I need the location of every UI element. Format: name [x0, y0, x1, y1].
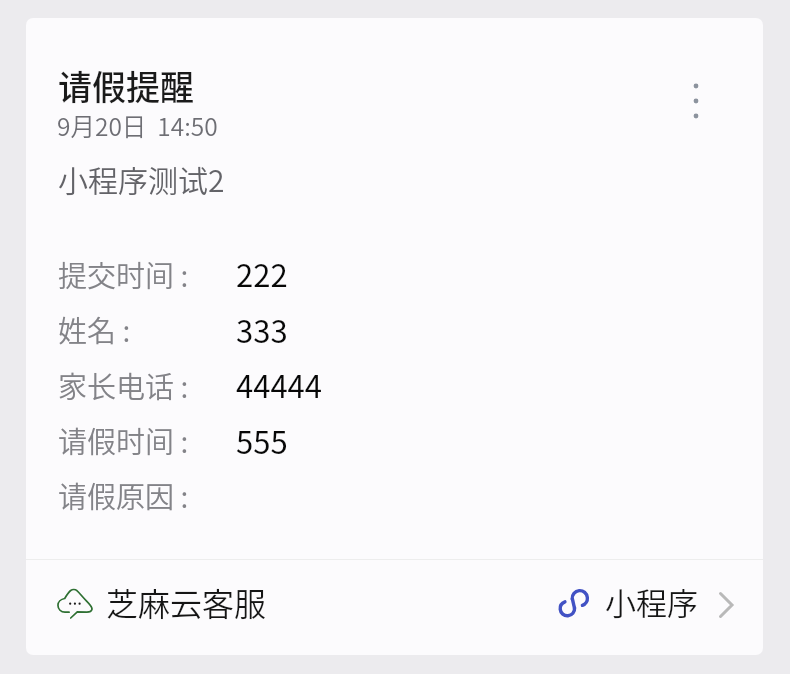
staticText: 555	[236, 418, 288, 463]
staticText: 333	[236, 307, 288, 352]
staticText: 请假时间 :	[58, 419, 189, 461]
staticText: 芝麻云客服	[106, 579, 267, 625]
button[interactable]: 请假提醒	[26, 18, 763, 655]
staticText: 家长电话 :	[58, 364, 189, 406]
staticText: 请假提醒	[58, 61, 194, 110]
staticText: 提交时间 :	[58, 253, 189, 295]
button[interactable]: 芝麻云客服	[52, 580, 274, 628]
button[interactable]: More options	[682, 72, 710, 130]
staticText: 姓名 :	[58, 308, 131, 350]
staticText: 222	[236, 251, 288, 296]
staticText: 小程序	[605, 579, 698, 624]
staticText: 小程序测试2	[58, 157, 225, 200]
staticText: 9月20日 14:50	[57, 108, 218, 143]
button[interactable]: 小程序	[553, 580, 739, 628]
staticText: 请假原因 :	[58, 474, 189, 516]
staticText: 44444	[236, 362, 323, 407]
